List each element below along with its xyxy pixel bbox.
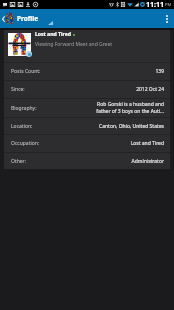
staticText: Administrator — [91, 158, 164, 165]
other: Navigate up — [2, 16, 5, 22]
staticText: 11:11 — [146, 0, 164, 9]
staticText: 2012 Oct 24 — [91, 86, 164, 93]
staticText: Lost and Tired — [91, 140, 164, 147]
button[interactable]: Location: — [4, 118, 170, 134]
button[interactable]: Biography: — [4, 99, 170, 117]
staticText: Viewing Forward Meet and Greet — [35, 41, 113, 48]
staticText: Since: — [11, 86, 25, 93]
button[interactable]: Other: — [4, 153, 170, 169]
staticText: Rob Gorski is a husband and father of 3 … — [91, 101, 164, 115]
staticText: PM — [165, 2, 172, 7]
staticText: Other: — [11, 158, 27, 165]
button[interactable]: Navigate up — [0, 9, 55, 28]
button[interactable]: Lost and Tired — [4, 30, 170, 62]
staticText: Lost and Tired — [35, 31, 71, 38]
button[interactable]: Since: — [4, 81, 170, 98]
staticText: Profile — [17, 14, 39, 23]
staticText: Biography: — [11, 105, 37, 112]
staticText: Posts Count: — [11, 68, 41, 75]
staticText: Canton, Ohio, United States — [91, 123, 164, 130]
button[interactable]: More options — [160, 9, 174, 28]
staticText: Occupation: — [11, 140, 40, 147]
button[interactable]: Posts Count: — [4, 63, 170, 80]
button[interactable]: Occupation: — [4, 135, 170, 152]
staticText: 139 — [91, 68, 164, 75]
staticText: Location: — [11, 123, 33, 130]
